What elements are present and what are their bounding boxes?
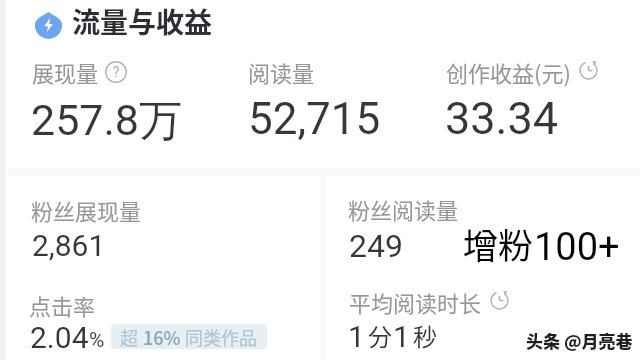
staticText: 257.8万 (31, 94, 183, 148)
button[interactable]: 超 (111, 324, 267, 349)
button[interactable]: 粉丝阅读量 (348, 193, 459, 225)
button[interactable]: 粉丝展现量 (31, 194, 142, 226)
staticText: 平均阅读时长 (349, 286, 482, 318)
staticText: 秒 (413, 318, 437, 353)
staticText: 创作收益(元) (446, 56, 571, 88)
staticText: ? (113, 64, 120, 80)
staticText: 流量与收益 (72, 1, 213, 42)
button[interactable]: 点击率 (29, 289, 96, 321)
staticText: % (89, 328, 105, 353)
button[interactable]: Help (105, 61, 127, 83)
staticText: 超 (120, 324, 143, 349)
staticText: 2.04 (30, 320, 89, 355)
staticText: 分 (368, 318, 392, 353)
button[interactable]: Refresh (489, 290, 510, 311)
staticText: 2,861 (32, 228, 106, 263)
staticText: 粉丝阅读量 (348, 193, 459, 225)
staticText: 点击率 (29, 289, 96, 321)
staticText: 增粉 (463, 218, 534, 269)
staticText: 阅读量 (248, 56, 315, 88)
staticText: 展现量 (32, 56, 99, 88)
staticText: 1 (393, 319, 410, 354)
button[interactable]: 创作收益(元) (446, 56, 599, 88)
staticText: 33.34 (445, 92, 559, 145)
button[interactable]: 阅读量 (248, 56, 315, 88)
staticText: 249 (349, 227, 403, 265)
staticText: 100+ (534, 225, 620, 270)
button[interactable]: 平均阅读时长 (349, 286, 510, 318)
button[interactable]: Refresh (578, 60, 599, 81)
staticText: 粉丝展现量 (31, 194, 142, 226)
button[interactable]: 展现量 (32, 56, 127, 88)
staticText: 52,715 (248, 93, 381, 145)
button[interactable]: 流量与收益 (34, 5, 213, 46)
staticText: 同类作品 (181, 324, 258, 349)
staticText: 头条 @月亮巷 (526, 328, 633, 353)
staticText: 16% (143, 324, 181, 349)
staticText: 1 (348, 319, 365, 354)
